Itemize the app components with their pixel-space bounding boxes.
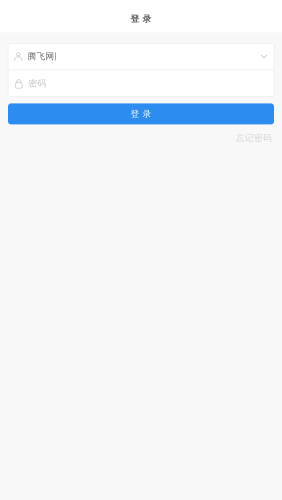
staticText: 腾飞网 [27,51,54,62]
staticText: 登 录 [130,108,151,119]
staticText: 登 录 [130,13,151,24]
staticText: 忘记密码 [236,132,272,143]
staticText: 密码 [28,78,46,89]
button[interactable]: 登 录 [8,103,274,124]
button[interactable]: 忘记密码 [236,132,272,143]
